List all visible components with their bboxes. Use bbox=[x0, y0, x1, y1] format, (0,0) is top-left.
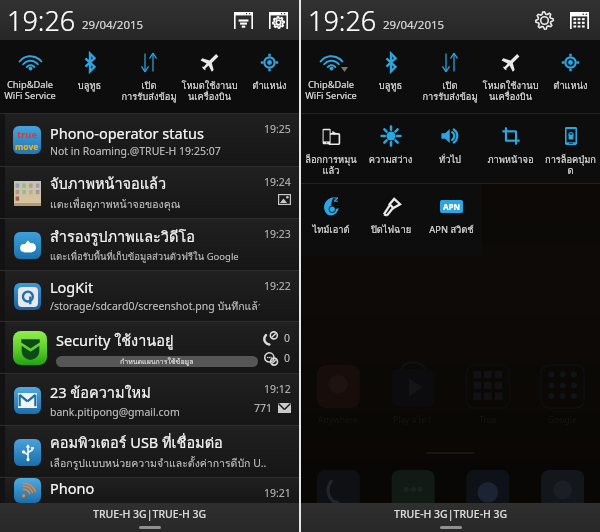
button[interactable]: คอมพิวเตอร์ USB ที่เชื่อมต่อ bbox=[0, 426, 299, 477]
staticText: บลูทูธ bbox=[361, 78, 420, 93]
button[interactable]: ภาพหน้าจอ bbox=[480, 114, 541, 183]
staticText: 19:22 bbox=[264, 279, 291, 293]
staticText: Chip&Dale WiFi Service bbox=[0, 78, 60, 102]
staticText: TRUE-H 3G|TRUE-H 3G bbox=[394, 507, 508, 521]
staticText: บลูทูธ bbox=[60, 78, 119, 93]
staticText: 19:24 bbox=[264, 175, 291, 189]
button[interactable]: Phono bbox=[0, 478, 299, 503]
button[interactable]: ทั่วไป bbox=[420, 114, 480, 183]
staticText: เลือกรูปแบบหน่วยความจำและตั้งค่าการดีบัก… bbox=[50, 455, 267, 472]
staticText: ทั่วไป bbox=[420, 152, 480, 167]
staticText: /storage/sdcard0/screenshot.png บันทึกแล… bbox=[50, 298, 260, 315]
staticText: true bbox=[17, 128, 38, 141]
button[interactable]: Chip&Dale WiFi Service bbox=[0, 40, 60, 113]
button[interactable]: TRUE-H 3G|TRUE-H 3G bbox=[301, 503, 600, 532]
staticText: เปิด การรับส่งข้อมู bbox=[420, 78, 480, 104]
staticText: 29/04/2015 bbox=[82, 17, 144, 33]
staticText: เปิด การรับส่งข้อมู bbox=[119, 78, 179, 104]
staticText: ความสว่าง bbox=[361, 152, 420, 167]
button[interactable]: Clear all notifications bbox=[234, 12, 253, 29]
staticText: ตำแหน่ง bbox=[240, 78, 299, 93]
button[interactable]: โหมดใช้งานบ นเครื่องบิน bbox=[480, 40, 541, 113]
button[interactable]: ไทม์เอาต์ bbox=[301, 184, 361, 256]
button[interactable]: ตำแหน่ง bbox=[240, 40, 299, 113]
staticText: 29/04/2015 bbox=[383, 17, 445, 33]
button[interactable]: บลูทูธ bbox=[361, 40, 420, 113]
staticText: 19:25 bbox=[264, 122, 291, 136]
button[interactable]: เปิด การรับส่งข้อมู bbox=[119, 40, 179, 113]
button[interactable]: การล็อคปุ่มก ด bbox=[541, 114, 600, 183]
button[interactable]: ล็อกการหมุน แล้ว bbox=[301, 114, 361, 183]
staticText: จับภาพหน้าจอแล้ว bbox=[50, 172, 167, 195]
staticText: 19:21 bbox=[264, 486, 291, 500]
staticText: Not in Roaming.@TRUE-H 19:25:07 bbox=[50, 144, 221, 158]
staticText: APN สวิตช์ bbox=[421, 222, 482, 237]
staticText: APN bbox=[443, 201, 461, 212]
staticText: 19:23 bbox=[264, 227, 291, 241]
button[interactable]: ตำแหน่ง bbox=[541, 40, 600, 113]
staticText: ภาพหน้าจอ bbox=[480, 152, 541, 167]
staticText: Google bbox=[548, 414, 577, 426]
button[interactable]: Quick settings bbox=[570, 12, 589, 29]
staticText: แตะเพื่อดูภาพหน้าจอของคุณ bbox=[50, 196, 181, 213]
button[interactable]: Chip&Dale WiFi Service bbox=[301, 40, 361, 113]
staticText: Anywhere bbox=[318, 414, 358, 426]
staticText: 771 bbox=[254, 401, 273, 415]
staticText: ล็อกการหมุน แล้ว bbox=[301, 152, 361, 178]
staticText: ปิดไฟฉาย bbox=[361, 222, 421, 237]
staticText: Phono bbox=[50, 478, 95, 498]
staticText: Chip&Dale WiFi Service bbox=[301, 78, 361, 102]
staticText: ตำแหน่ง bbox=[541, 78, 600, 93]
button[interactable]: Settings bbox=[535, 11, 554, 30]
button[interactable]: ความสว่าง bbox=[361, 114, 420, 183]
staticText: 19:12 bbox=[264, 382, 291, 396]
button[interactable]: 23 ข้อความใหม่ bbox=[0, 374, 299, 425]
button[interactable]: APN bbox=[421, 184, 482, 256]
button[interactable]: จับภาพหน้าจอแล้ว bbox=[0, 167, 299, 218]
staticText: กำหนดแผนการใช้ข้อมูล bbox=[120, 356, 194, 367]
staticText: bank.pitipong@gmail.com bbox=[50, 405, 180, 419]
staticText: แตะเพื่อรับพื้นที่เก็บข้อมูลส่วนตัวฟรีใน… bbox=[50, 249, 239, 264]
button[interactable]: โหมดใช้งานบ นเครื่องบิน bbox=[179, 40, 240, 113]
staticText: TRUE-H 3G|TRUE-H 3G bbox=[93, 507, 207, 521]
staticText: สำรองรูปภาพและวิดีโอ bbox=[50, 225, 195, 248]
button[interactable]: ปิดไฟฉาย bbox=[361, 184, 421, 256]
button[interactable]: LogKit bbox=[0, 271, 299, 321]
button[interactable]: บลูทูธ bbox=[60, 40, 119, 113]
button[interactable]: เปิด การรับส่งข้อมู bbox=[420, 40, 480, 113]
button[interactable]: Security ใช้งานอยู่ bbox=[0, 322, 299, 373]
button[interactable]: Settings bbox=[269, 12, 288, 29]
staticText: LogKit bbox=[50, 277, 94, 297]
staticText: 0 bbox=[284, 331, 291, 345]
button[interactable]: true bbox=[0, 114, 299, 166]
staticText: True bbox=[479, 414, 497, 426]
staticText: Phono-operator status bbox=[50, 123, 204, 143]
staticText: 0 bbox=[284, 351, 291, 365]
button[interactable]: TRUE-H 3G|TRUE-H 3G bbox=[0, 503, 299, 532]
staticText: 23 ข้อความใหม่ bbox=[50, 381, 151, 404]
staticText: คอมพิวเตอร์ USB ที่เชื่อมต่อ bbox=[50, 431, 223, 454]
staticText: 19:26 bbox=[7, 2, 76, 39]
staticText: การล็อคปุ่มก ด bbox=[541, 152, 600, 178]
staticText: 19:26 bbox=[308, 2, 377, 39]
staticText: โหมดใช้งานบ นเครื่องบิน bbox=[480, 78, 541, 104]
staticText: Security ใช้งานอยู่ bbox=[56, 329, 174, 352]
staticText: ไทม์เอาต์ bbox=[301, 222, 361, 237]
button[interactable]: สำรองรูปภาพและวิดีโอ bbox=[0, 219, 299, 270]
staticText: โหมดใช้งานบ นเครื่องบิน bbox=[179, 78, 240, 104]
staticText: move bbox=[15, 141, 39, 153]
